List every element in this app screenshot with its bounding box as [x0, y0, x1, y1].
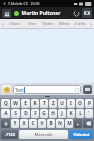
staticText: .?123 — [5, 132, 15, 137]
button[interactable]: Q — [1, 99, 10, 108]
staticText: M — [67, 120, 72, 127]
button[interactable]: Key — [83, 119, 93, 128]
staticText: Text — [15, 87, 24, 93]
staticText: F — [34, 110, 37, 117]
staticText: E — [24, 100, 27, 107]
staticText: W — [13, 100, 18, 107]
button[interactable]: G — [40, 109, 48, 118]
button[interactable]: Týden — [40, 19, 56, 28]
staticText: S — [14, 110, 17, 117]
button[interactable]: S — [11, 109, 20, 118]
staticText: Y — [13, 120, 17, 127]
staticText: Týden — [42, 21, 54, 26]
staticText: Mezerník — [34, 132, 53, 138]
button[interactable]: W — [11, 99, 20, 108]
staticText: B — [49, 120, 53, 127]
staticText: 23:35 — [30, 1, 40, 6]
button[interactable]: N — [56, 119, 64, 128]
button[interactable]: M — [65, 119, 73, 128]
button[interactable]: Contacts — [2, 9, 11, 18]
button[interactable]: U — [58, 99, 66, 108]
button[interactable]: ' — [85, 109, 93, 118]
button[interactable]: 3 měs. — [72, 19, 88, 28]
button[interactable]: Attach — [83, 85, 92, 94]
staticText: H — [51, 110, 55, 117]
staticText: Martin Pultzner — [21, 10, 61, 17]
button[interactable]: Mezerník — [19, 130, 68, 139]
button[interactable]: T — [40, 99, 48, 108]
button[interactable]: C — [29, 119, 37, 128]
button[interactable]: , — [74, 119, 82, 128]
staticText: G — [42, 110, 46, 117]
staticText: ' — [88, 110, 90, 117]
button[interactable]: F — [31, 109, 39, 118]
button[interactable]: Odeslat — [69, 130, 93, 139]
button[interactable]: Call — [72, 9, 81, 18]
staticText: P — [88, 100, 91, 107]
button[interactable]: O — [76, 99, 84, 108]
staticText: , — [77, 120, 79, 127]
staticText: Z — [52, 100, 55, 107]
button[interactable]: Z — [49, 99, 57, 108]
button[interactable]: Měsíc — [56, 19, 72, 28]
staticText: U — [60, 100, 64, 107]
button[interactable]: Text — [15, 85, 79, 94]
button[interactable]: B — [47, 119, 55, 128]
staticText: X — [22, 120, 26, 127]
staticText: K — [69, 110, 73, 117]
button[interactable]: A — [1, 109, 10, 118]
staticText: Více — [28, 21, 36, 26]
button[interactable]: Camera — [82, 8, 92, 18]
button[interactable]: Key — [1, 119, 10, 128]
button[interactable]: H — [49, 109, 57, 118]
button[interactable]: Next — [88, 19, 94, 28]
staticText: O — [78, 100, 82, 107]
button[interactable]: Emoji — [2, 85, 11, 94]
staticText: 3 měs. — [74, 21, 87, 26]
staticText: A — [4, 110, 8, 117]
staticText: I — [70, 100, 72, 107]
button[interactable]: R — [31, 99, 39, 108]
staticText: J — [61, 110, 63, 117]
button[interactable]: Y — [11, 119, 19, 128]
button[interactable]: Více — [23, 19, 40, 28]
staticText: Měsíc — [59, 21, 70, 26]
staticText: C — [31, 120, 35, 127]
button[interactable]: P — [85, 99, 93, 108]
staticText: R — [33, 100, 37, 107]
staticText: V — [40, 120, 44, 127]
staticText: › — [90, 21, 92, 27]
staticText: T — [43, 100, 46, 107]
button[interactable]: Chats — [6, 19, 23, 28]
staticText: T-Mobile CZ — [8, 1, 28, 6]
button[interactable]: J — [58, 109, 66, 118]
button[interactable]: K — [67, 109, 75, 118]
staticText: Chats — [9, 21, 20, 26]
button[interactable]: I — [67, 99, 75, 108]
button[interactable]: .?123 — [1, 130, 18, 139]
staticText: ‹ — [2, 21, 4, 27]
button[interactable]: L — [76, 109, 84, 118]
staticText: Q — [4, 100, 8, 107]
staticText: N — [58, 120, 62, 127]
button[interactable]: E — [21, 99, 30, 108]
staticText: L — [79, 110, 82, 117]
staticText: D — [24, 110, 28, 117]
button[interactable]: Previous — [0, 19, 6, 28]
button[interactable]: X — [20, 119, 28, 128]
button[interactable]: V — [38, 119, 46, 128]
button[interactable]: D — [21, 109, 30, 118]
staticText: Odeslat — [73, 132, 90, 138]
